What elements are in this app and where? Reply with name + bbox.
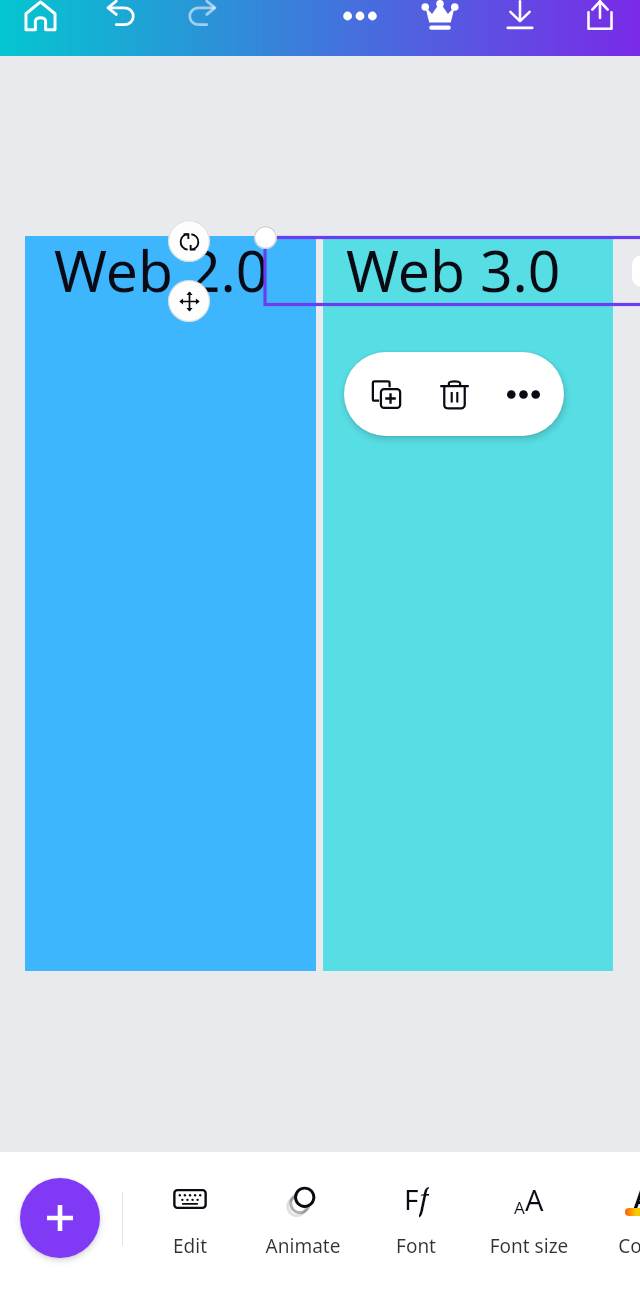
button[interactable]: F	[360, 1179, 472, 1259]
button[interactable]: Add element	[20, 1178, 100, 1258]
button[interactable]: Move	[168, 280, 210, 322]
button[interactable]: A	[473, 1179, 585, 1259]
staticText: A	[633, 1180, 640, 1218]
button[interactable]: Undo	[98, 0, 146, 39]
staticText: A	[514, 1196, 525, 1219]
staticText: Font	[360, 1233, 472, 1259]
staticText: Animate	[247, 1233, 359, 1259]
button[interactable]: Redo	[177, 0, 225, 39]
button[interactable]: More options	[336, 0, 384, 40]
button[interactable]: Resize	[254, 226, 277, 249]
button[interactable]: Animate	[247, 1179, 359, 1259]
button[interactable]: Duplicate	[344, 352, 564, 436]
staticText: Web 3.0	[346, 231, 561, 309]
button[interactable]: Delete	[427, 367, 481, 421]
button[interactable]: Download	[496, 0, 544, 40]
button[interactable]: Rotate	[168, 220, 210, 262]
staticText: Web 2.0	[54, 231, 269, 309]
staticText: Edit	[134, 1233, 246, 1259]
button[interactable]: Duplicate	[359, 367, 413, 421]
staticText: Color	[586, 1233, 640, 1259]
staticText: f	[419, 1179, 429, 1219]
button[interactable]: More	[496, 367, 550, 421]
button[interactable]: Edit	[134, 1179, 246, 1259]
button[interactable]: A	[586, 1179, 640, 1259]
button[interactable]: Home	[16, 0, 64, 40]
button[interactable]: Share	[576, 0, 624, 40]
staticText: A	[525, 1180, 544, 1219]
button[interactable]: Upgrade to Pro	[416, 0, 464, 40]
staticText: F	[404, 1180, 419, 1218]
staticText: Font size	[473, 1233, 585, 1259]
